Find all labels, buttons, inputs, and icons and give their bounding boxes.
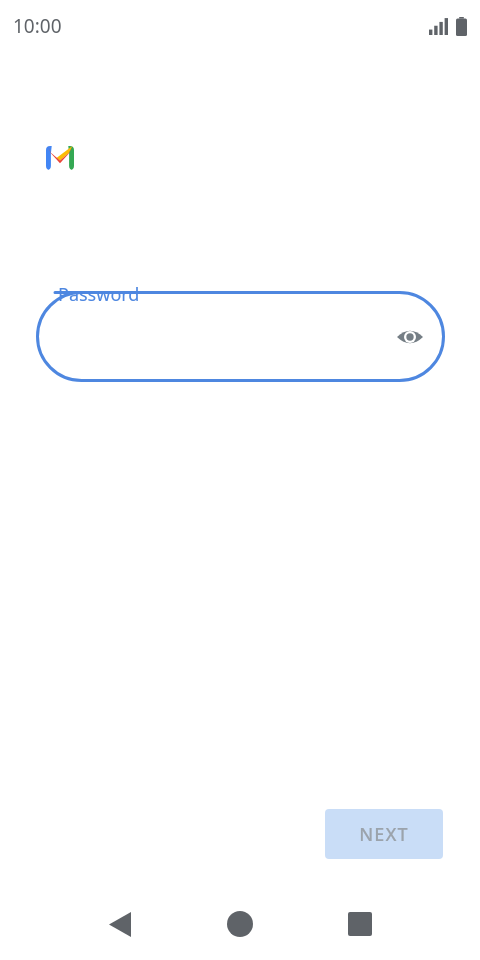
button[interactable]: Recent apps — [336, 900, 384, 948]
staticText: 10:00 — [13, 13, 62, 39]
button[interactable]: Back — [96, 900, 144, 948]
button[interactable]: Password — [36, 291, 445, 382]
staticText: Password — [58, 282, 140, 307]
button[interactable]: Show password — [388, 315, 432, 359]
button[interactable]: Home — [216, 900, 264, 948]
staticText: NEXT — [359, 822, 409, 847]
button[interactable]: NEXT — [325, 809, 443, 859]
